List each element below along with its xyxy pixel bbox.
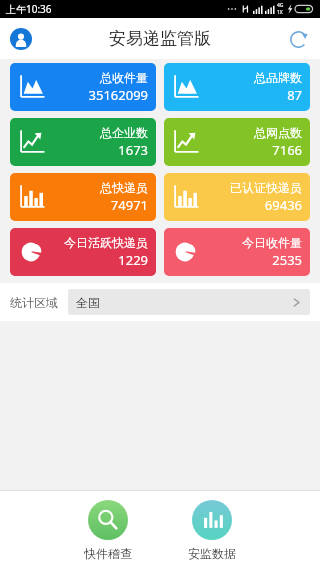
- staticText: 全国: [76, 295, 100, 310]
- staticText: 1229: [118, 251, 148, 269]
- staticText: 69436: [264, 196, 302, 214]
- staticText: 总网点数: [254, 125, 302, 140]
- button[interactable]: Profile: [8, 26, 34, 52]
- staticText: 2535: [272, 251, 302, 269]
- staticText: 安监数据: [188, 546, 236, 561]
- staticText: 总收件量: [100, 70, 148, 85]
- button[interactable]: 总企业数: [10, 118, 156, 166]
- staticText: 4G: [277, 2, 284, 9]
- staticText: 今日收件量: [242, 235, 302, 250]
- button[interactable]: 总快递员: [10, 173, 156, 221]
- staticText: 今日活跃快递员: [64, 235, 148, 250]
- staticText: 74971: [110, 196, 148, 214]
- button[interactable]: 快件稽查: [80, 496, 136, 565]
- button[interactable]: 今日活跃快递员: [10, 228, 156, 276]
- staticText: 87: [287, 86, 302, 104]
- staticText: 35162099: [88, 86, 148, 104]
- staticText: 已认证快递员: [230, 180, 302, 195]
- button[interactable]: Refresh: [285, 26, 311, 52]
- button[interactable]: 安监数据: [184, 496, 240, 565]
- staticText: 1X: [277, 9, 283, 16]
- button[interactable]: 已认证快递员: [164, 173, 310, 221]
- staticText: 总快递员: [100, 180, 148, 195]
- button[interactable]: 总品牌数: [164, 63, 310, 111]
- staticText: 快件稽查: [84, 546, 132, 561]
- button[interactable]: 总网点数: [164, 118, 310, 166]
- staticText: 上午10:36: [6, 2, 52, 16]
- staticText: 统计区域: [10, 295, 58, 310]
- button[interactable]: 全国: [68, 289, 310, 315]
- button[interactable]: 总收件量: [10, 63, 156, 111]
- staticText: 1673: [118, 141, 148, 159]
- staticText: 总品牌数: [254, 70, 302, 85]
- staticText: 总企业数: [100, 125, 148, 140]
- staticText: 7166: [272, 141, 302, 159]
- staticText: 安易递监管版: [109, 28, 211, 49]
- button[interactable]: 今日收件量: [164, 228, 310, 276]
